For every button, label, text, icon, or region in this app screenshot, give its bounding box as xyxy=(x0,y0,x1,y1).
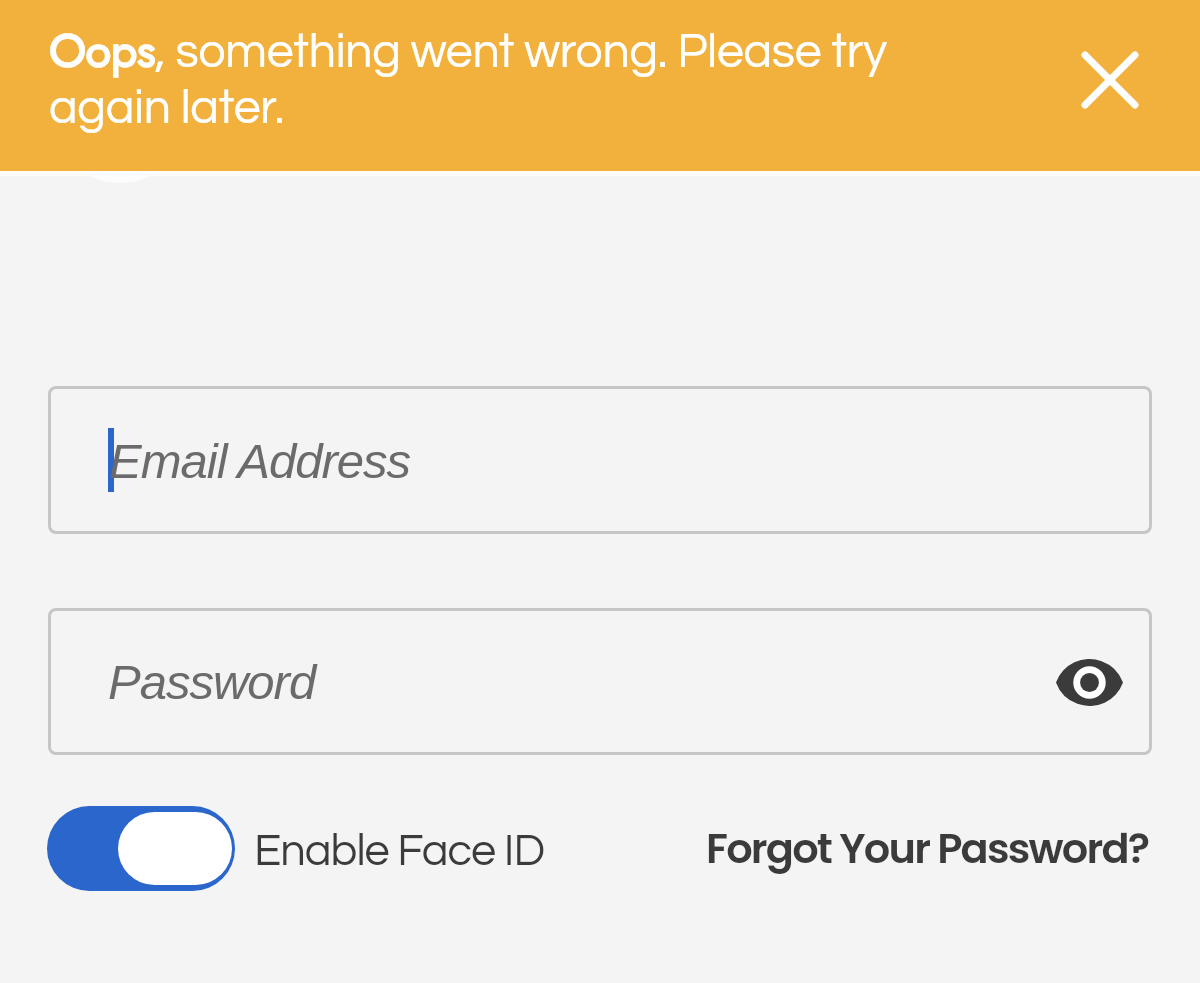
button[interactable]: Forgot Your Password? xyxy=(706,806,1149,891)
staticText: Password xyxy=(108,655,316,710)
button[interactable]: Enable Face ID xyxy=(47,806,526,891)
staticText: Email Address xyxy=(109,434,411,489)
button[interactable]: Password xyxy=(48,608,1152,755)
button[interactable]: Email Address xyxy=(48,386,1152,534)
staticText: Forgot Your Password? xyxy=(706,819,1149,877)
staticText: Enable Face ID xyxy=(254,828,545,874)
staticText: again later. xyxy=(49,84,284,133)
staticText: Oops, something went wrong. Please try xyxy=(49,17,887,85)
button[interactable]: Show password xyxy=(1051,644,1127,720)
button[interactable]: Dismiss message xyxy=(1074,44,1145,115)
